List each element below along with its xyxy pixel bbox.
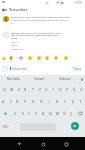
staticText: E	[18, 87, 20, 92]
staticText: Yorumlar	[9, 7, 28, 13]
button[interactable]: Shift	[0, 107, 11, 119]
staticText: 2 s	[11, 22, 14, 25]
staticText: Merhaba	[7, 77, 20, 81]
button[interactable]: U	[43, 83, 50, 95]
staticText: J	[49, 99, 50, 104]
staticText: Ü	[80, 87, 83, 92]
staticText: T	[32, 87, 34, 92]
button[interactable]: I	[50, 83, 57, 95]
staticText: M	[56, 111, 60, 116]
staticText: İ	[80, 99, 82, 104]
staticText: I	[53, 87, 55, 92]
button[interactable]: Home	[38, 139, 48, 149]
staticText: Ğ	[73, 87, 76, 92]
button[interactable]: H	[37, 95, 45, 107]
button[interactable]: Ç	[68, 107, 75, 119]
button[interactable]: T	[29, 83, 36, 95]
staticText: Kullanıcı	[59, 77, 71, 81]
staticText: H	[40, 99, 43, 104]
staticText: B	[42, 111, 45, 116]
button[interactable]: Reaction	[53, 55, 58, 60]
button[interactable]: V	[33, 107, 40, 119]
staticText: R	[24, 87, 27, 92]
staticText: U	[45, 87, 48, 92]
button[interactable]: Tamam	[26, 75, 52, 83]
staticText: V	[35, 111, 38, 116]
staticText: W	[10, 87, 14, 92]
button[interactable]: Voice input	[78, 75, 85, 83]
staticText: N	[49, 111, 52, 116]
button[interactable]: L	[61, 95, 69, 107]
staticText: kullaniciadi Harika bir paylaşım olmuş d…	[11, 15, 70, 18]
button[interactable]: Backspace	[75, 107, 85, 119]
button[interactable]: Reaction	[8, 55, 13, 60]
button[interactable]: S	[7, 95, 14, 107]
staticText: #Anlamıyorum #Gerçekdeğil #Teşekkürler #…	[11, 18, 69, 21]
button[interactable]: J	[45, 95, 53, 107]
button[interactable]: P	[64, 83, 71, 95]
button[interactable]: Recents	[61, 139, 71, 149]
staticText: G	[32, 99, 35, 104]
button[interactable]: kullaniciadi Harika bir paylaşım olmuş d…	[0, 15, 85, 25]
staticText: Tamam	[34, 77, 45, 81]
button[interactable]: N	[47, 107, 54, 119]
staticText: Paylaş	[73, 67, 81, 71]
staticText: K	[56, 99, 59, 104]
button[interactable]: C	[26, 107, 33, 119]
button[interactable]: Kullanıcı	[52, 75, 78, 83]
button[interactable]: K	[53, 95, 61, 107]
staticText: O	[59, 87, 62, 92]
button[interactable]: G	[29, 95, 37, 107]
button[interactable]: R	[22, 83, 29, 95]
button[interactable]: Back	[0, 6, 9, 14]
button[interactable]: .	[62, 124, 63, 128]
staticText: 10:15	[74, 1, 83, 5]
button[interactable]: M	[54, 107, 61, 119]
staticText: D	[16, 99, 19, 104]
button[interactable]: Z	[11, 107, 19, 119]
button[interactable]: Send	[71, 122, 79, 130]
button[interactable]: A	[0, 95, 7, 107]
button[interactable]: ?123	[2, 125, 8, 129]
staticText: C	[28, 111, 31, 116]
staticText: A	[2, 99, 5, 104]
staticText: mehmet Bunlardan bir cok kacanlarını var…	[11, 31, 62, 40]
staticText: S	[10, 99, 12, 104]
staticText: Yorum ekle...	[12, 67, 29, 71]
button[interactable]: D	[14, 95, 21, 107]
button[interactable]: Reaction	[63, 55, 68, 60]
button[interactable]: Ö	[61, 107, 68, 119]
button[interactable]: B	[40, 107, 47, 119]
button[interactable]: Merhaba	[0, 75, 26, 83]
button[interactable]: O	[57, 83, 64, 95]
button[interactable]: Q	[0, 83, 8, 95]
button[interactable]: Reaction	[44, 55, 49, 60]
staticText: Y	[39, 87, 41, 92]
button[interactable]: İ	[77, 95, 85, 107]
staticText: Yanıtları gör	[11, 48, 23, 51]
button[interactable]: Reaction	[36, 55, 41, 60]
button[interactable]: X	[19, 107, 26, 119]
staticText: Ş	[72, 99, 74, 104]
button[interactable]: Reaction	[27, 55, 32, 60]
button[interactable]: Reaction	[1, 55, 6, 60]
button[interactable]: Y	[36, 83, 43, 95]
staticText: Yanıtla	[11, 44, 18, 47]
button[interactable]: Ş	[69, 95, 77, 107]
staticText: 2 sa	[11, 41, 15, 44]
button[interactable]: Back	[14, 139, 24, 149]
button[interactable]: E	[15, 83, 22, 95]
button[interactable]: Ü	[78, 83, 85, 95]
button[interactable]: Paylaş	[72, 66, 82, 72]
staticText: Z	[14, 111, 16, 116]
staticText: F	[24, 99, 26, 104]
button[interactable]: ,	[14, 124, 15, 128]
button[interactable]: Reaction	[18, 55, 23, 60]
staticText: X	[22, 111, 24, 116]
button[interactable]: F	[21, 95, 29, 107]
staticText: Ö	[63, 111, 66, 116]
button[interactable]: W	[8, 83, 15, 95]
button[interactable]: mehmet Bunlardan bir cok kacanlarını var…	[0, 31, 85, 51]
button[interactable]: Ğ	[71, 83, 78, 95]
